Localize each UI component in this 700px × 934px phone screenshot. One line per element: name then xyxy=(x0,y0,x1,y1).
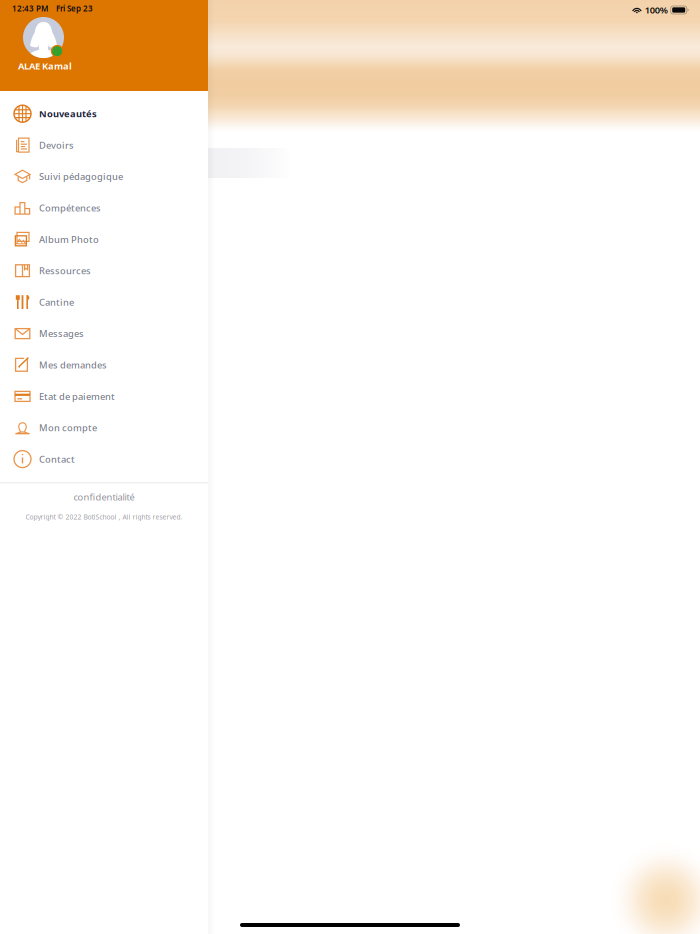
button[interactable]: Mon compte xyxy=(0,412,208,443)
button[interactable]: Cantine xyxy=(0,286,208,318)
staticText: Album Photo xyxy=(39,233,99,245)
staticText: Mes demandes xyxy=(39,359,107,371)
staticText: ALAE Kamal xyxy=(18,60,72,72)
staticText: Etat de paiement xyxy=(39,390,115,402)
button[interactable]: Mes demandes xyxy=(0,349,208,381)
button[interactable]: Etat de paiement xyxy=(0,381,208,412)
staticText: Suivi pédagogique xyxy=(39,170,123,183)
staticText: 12:43 PM xyxy=(12,3,48,14)
button[interactable]: Ressources xyxy=(0,255,208,286)
staticText: Ressources xyxy=(39,264,91,277)
staticText: Devoirs xyxy=(39,139,74,151)
button[interactable]: Nouveautés xyxy=(0,98,208,129)
button[interactable]: Devoirs xyxy=(0,129,208,161)
staticText: Copyright © 2022 BotiSchool , All rights… xyxy=(25,512,182,521)
staticText: Mon compte xyxy=(39,421,97,434)
button[interactable]: Messages xyxy=(0,318,208,349)
button[interactable]: confidentialité xyxy=(0,483,208,510)
button[interactable]: Nouveau message xyxy=(604,838,700,934)
staticText: Nouveautés xyxy=(39,107,97,120)
staticText: Cantine xyxy=(39,296,74,308)
button[interactable]: Contact xyxy=(0,443,208,475)
staticText: Messages xyxy=(39,327,84,340)
button[interactable]: Compétences xyxy=(0,192,208,224)
staticText: Contact xyxy=(39,453,75,465)
button[interactable]: Album Photo xyxy=(0,224,208,255)
staticText: Compétences xyxy=(39,202,101,214)
staticText: confidentialité xyxy=(73,491,134,503)
staticText: 100% xyxy=(645,4,668,16)
staticText: Fri Sep 23 xyxy=(56,3,93,14)
button[interactable]: Suivi pédagogique xyxy=(0,161,208,192)
